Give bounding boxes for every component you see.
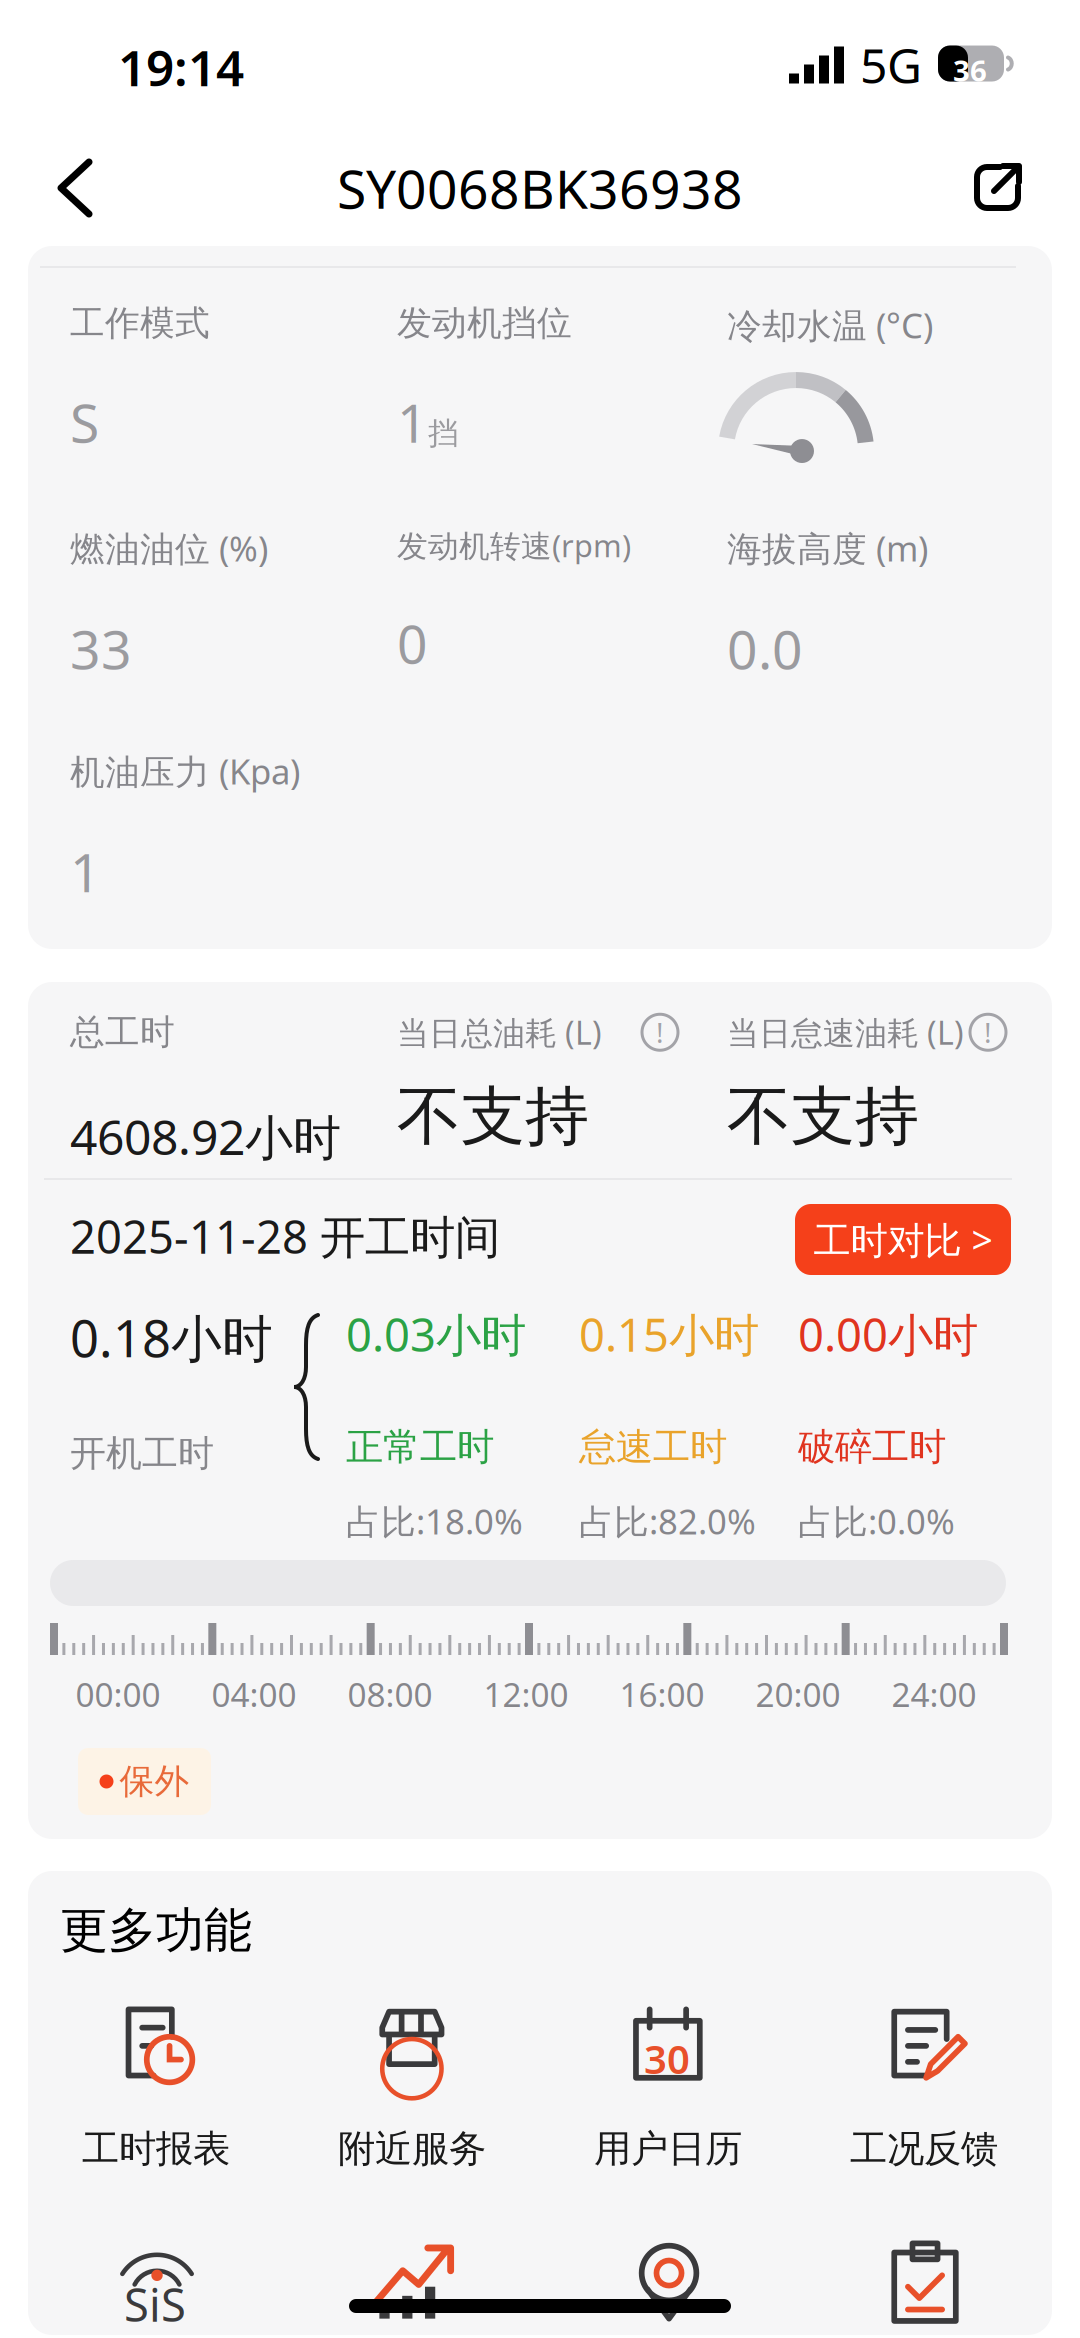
button[interactable]: 工况反馈 (796, 1998, 1052, 2172)
staticText: 燃油油位 (%) (70, 525, 268, 571)
button[interactable] (540, 2232, 796, 2338)
staticText: 占比:82.0% (579, 1498, 756, 1544)
staticText: 19:14 (118, 34, 244, 100)
staticText: 20:00 (755, 1672, 840, 1716)
button[interactable]: 30 (540, 1998, 796, 2172)
staticText: 怠速工时 (579, 1424, 727, 1470)
staticText: 工时报表 (82, 2126, 230, 2172)
button[interactable]: 附近服务 (284, 1998, 540, 2172)
staticText: ! (984, 1014, 992, 1051)
staticText: 工时对比 > (813, 1215, 992, 1264)
staticText: 当日怠速油耗 (L) (727, 1011, 964, 1053)
staticText: 0.15小时 (579, 1304, 759, 1364)
staticText: 00:00 (75, 1672, 160, 1716)
staticText: ! (656, 1014, 664, 1051)
button[interactable]: SiS (28, 2232, 284, 2338)
staticText: 2025-11-28 开工时间 (70, 1206, 500, 1266)
staticText: SY0068BK36938 (337, 153, 743, 223)
staticText: 0.18小时 (70, 1304, 273, 1371)
staticText: 4608.92小时 (70, 1105, 341, 1168)
staticText: 12:00 (483, 1672, 568, 1716)
staticText: S (70, 387, 99, 457)
button[interactable]: 工时报表 (28, 1998, 284, 2172)
staticText: 附近服务 (338, 2126, 486, 2172)
staticText: 发动机挡位 (397, 302, 572, 345)
staticText: 工况反馈 (850, 2126, 998, 2172)
staticText: 0.03小时 (346, 1304, 526, 1364)
staticText: 冷却水温 (°C) (727, 302, 933, 348)
staticText: 总工时 (70, 1011, 175, 1054)
staticText: 保外 (119, 1760, 189, 1803)
staticText: 工作模式 (70, 302, 210, 345)
staticText: 占比:18.0% (346, 1498, 523, 1544)
button[interactable] (796, 2232, 1052, 2338)
staticText: 24:00 (891, 1672, 976, 1716)
staticText: 33 (70, 613, 132, 684)
staticText: 挡 (428, 415, 459, 452)
staticText: 开机工时 (70, 1431, 214, 1475)
staticText: 正常工时 (346, 1424, 494, 1470)
staticText: 16:00 (619, 1672, 704, 1716)
staticText: 用户日历 (594, 2126, 742, 2172)
staticText: 1 (397, 387, 428, 457)
staticText: 04:00 (211, 1672, 296, 1716)
staticText: 破碎工时 (798, 1424, 946, 1470)
staticText: SiS (124, 2274, 186, 2334)
staticText: 0.0 (727, 613, 803, 684)
staticText: 0 (397, 608, 428, 678)
staticText: 当日总油耗 (L) (397, 1011, 602, 1053)
staticText: 0.00小时 (798, 1304, 978, 1364)
button[interactable]: Back (40, 138, 112, 238)
staticText: 更多功能 (60, 1901, 252, 1960)
button[interactable]: Share (956, 146, 1040, 230)
staticText: 1 (70, 836, 101, 907)
staticText: 海拔高度 (m) (727, 525, 928, 571)
staticText: 5G (860, 33, 922, 97)
staticText: 36 (953, 50, 987, 89)
staticText: 机油压力 (Kpa) (70, 748, 300, 794)
staticText: 不支持 (727, 1077, 919, 1156)
staticText: 发动机转速(rpm) (397, 525, 631, 566)
staticText: 占比:0.0% (798, 1498, 955, 1544)
button[interactable] (284, 2232, 540, 2338)
button[interactable]: 工时对比 > (795, 1204, 1011, 1275)
staticText: 08:00 (347, 1672, 432, 1716)
staticText: 30 (644, 2032, 690, 2085)
staticText: 不支持 (397, 1077, 589, 1156)
